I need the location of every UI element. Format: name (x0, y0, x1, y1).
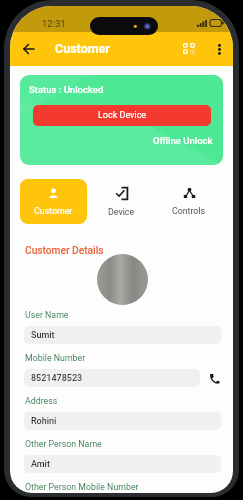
staticText: Sumit (31, 330, 55, 341)
button[interactable]: Controls (155, 179, 223, 224)
staticText: Rohini (31, 416, 57, 427)
staticText: Device (108, 207, 135, 217)
button[interactable]: Lock Device (33, 105, 211, 126)
button[interactable]: Call (207, 371, 221, 385)
button[interactable]: Device (87, 179, 155, 224)
staticText: Other Person Mobile Number (25, 482, 139, 492)
staticText: 8521478523 (31, 373, 83, 384)
staticText: Status : Unlocked (29, 84, 104, 95)
staticText: Lock Device (98, 110, 147, 121)
button[interactable]: Customer (20, 179, 87, 224)
button[interactable]: More options (208, 38, 230, 60)
staticText: 12:31 (42, 18, 66, 29)
staticText: Address (25, 396, 58, 406)
staticText: Amit (31, 459, 50, 470)
staticText: Customer (55, 41, 110, 56)
staticText: Customer Details (25, 245, 104, 257)
staticText: Mobile Number (25, 353, 86, 363)
staticText: Customer (34, 206, 73, 216)
button[interactable]: Offline Unlock (153, 135, 213, 146)
staticText: Controls (172, 206, 206, 216)
staticText: User Name (25, 310, 69, 320)
button[interactable]: Scan QR code (178, 37, 200, 59)
staticText: Other Person Name (25, 439, 102, 449)
button[interactable]: Back (17, 38, 39, 60)
